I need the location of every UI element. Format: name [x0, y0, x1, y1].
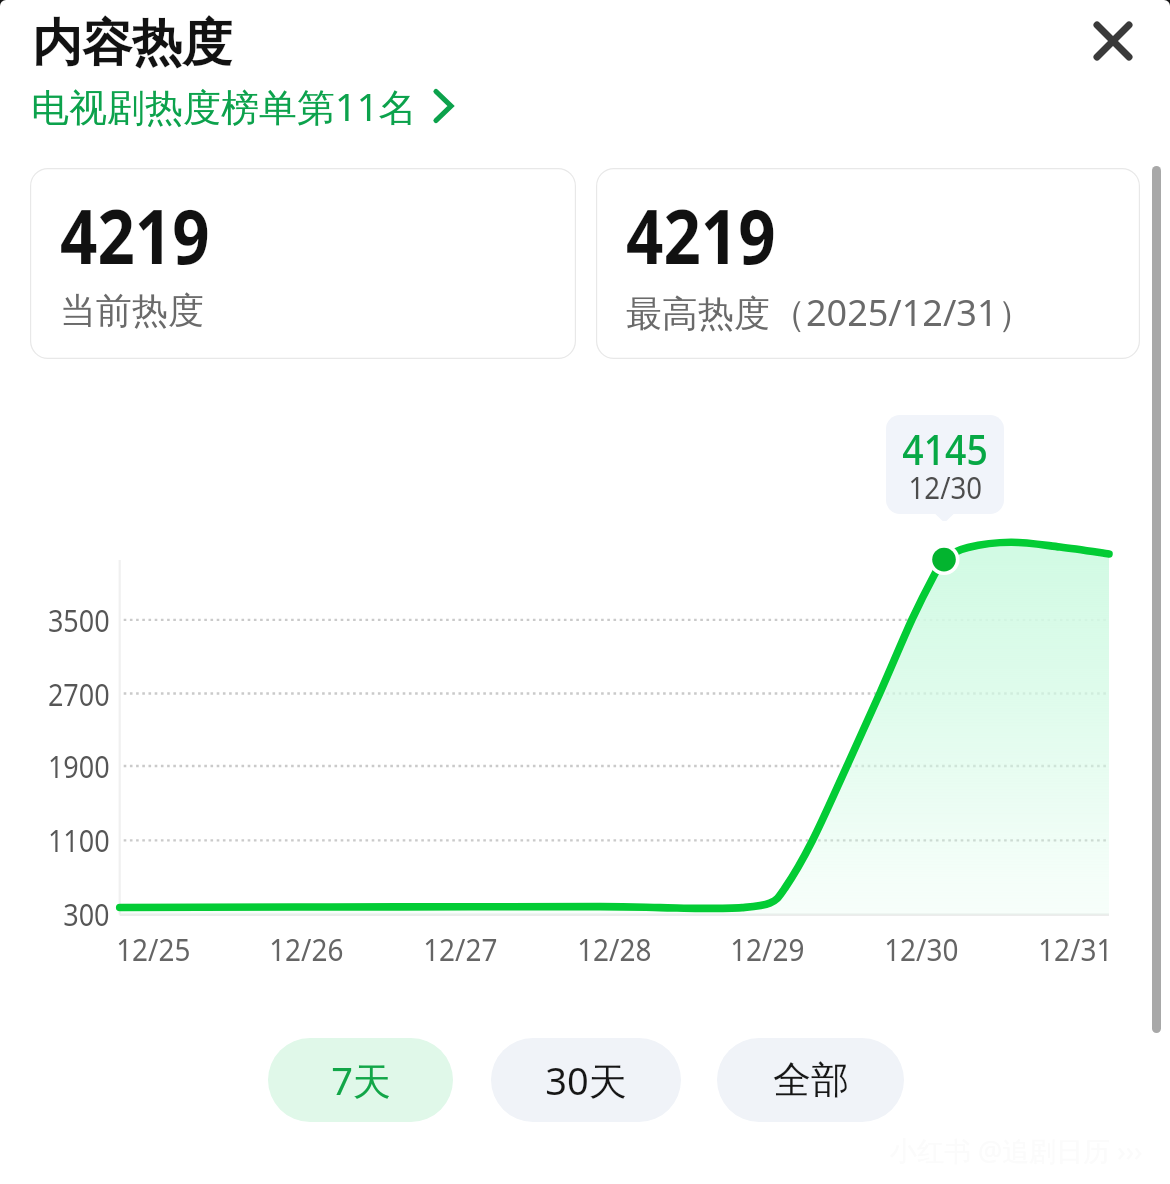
- staticText: 电视剧热度榜单第11名: [31, 80, 417, 132]
- staticText: 全部: [773, 1056, 849, 1104]
- button[interactable]: 4219: [30, 168, 576, 359]
- button[interactable]: 4219: [596, 168, 1140, 359]
- staticText: 最高热度（2025/12/31）: [626, 288, 1034, 337]
- button[interactable]: 电视剧热度榜单第11名: [31, 80, 454, 132]
- staticText: 1900: [48, 746, 110, 787]
- staticText: 3500: [48, 600, 110, 641]
- staticText: 12/27: [423, 928, 498, 970]
- staticText: 7天: [331, 1054, 391, 1106]
- staticText: 300: [63, 894, 110, 935]
- staticText: 12/29: [730, 928, 805, 970]
- button[interactable]: 全部: [717, 1038, 904, 1122]
- staticText: 30天: [545, 1054, 627, 1106]
- staticText: 内容热度: [32, 12, 232, 75]
- staticText: 4145: [902, 420, 989, 468]
- staticText: 4219: [60, 183, 210, 287]
- staticText: 4219: [626, 183, 776, 287]
- staticText: 12/28: [577, 928, 652, 970]
- staticText: 12/26: [269, 928, 344, 970]
- staticText: 1100: [48, 820, 110, 861]
- staticText: 12/25: [116, 928, 191, 970]
- button[interactable]: 7天: [268, 1038, 453, 1122]
- staticText: 12/31: [1038, 928, 1113, 970]
- button[interactable]: 30天: [491, 1038, 681, 1122]
- staticText: 2700: [48, 674, 110, 715]
- button[interactable]: 关闭: [1080, 8, 1146, 74]
- staticText: 12/30: [909, 466, 982, 504]
- staticText: 12/30: [884, 928, 959, 970]
- staticText: 当前热度: [60, 288, 204, 333]
